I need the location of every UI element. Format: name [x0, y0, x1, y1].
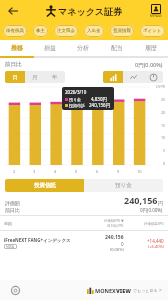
staticText: VIEW — [116, 287, 131, 294]
staticText: (+6.40%) — [148, 244, 164, 249]
button[interactable]: Pie chart — [143, 71, 163, 83]
staticText: 円 — [158, 200, 163, 206]
button[interactable]: My page — [150, 4, 162, 18]
staticText: 0円(0.00%) — [140, 207, 163, 213]
staticText: 4 — [54, 169, 57, 174]
staticText: 入出金 — [87, 28, 101, 34]
staticText: MYPAGE — [150, 14, 162, 18]
button[interactable]: 投資信託 — [5, 179, 84, 192]
staticText: 0 — [163, 161, 166, 166]
button[interactable]: ポイント — [140, 25, 165, 37]
button[interactable]: 日 — [5, 71, 25, 83]
button[interactable]: 入出金 — [84, 25, 104, 37]
staticText: 配当 — [111, 44, 123, 52]
button[interactable]: Line chart — [123, 71, 143, 83]
button[interactable]: 損益 — [33, 40, 66, 56]
staticText: 3 — [33, 169, 36, 174]
staticText: 投資信託 — [34, 182, 56, 189]
staticText: 240,156 — [105, 234, 124, 241]
staticText: 前日比 — [5, 61, 22, 68]
button[interactable]: 履歴 — [134, 40, 168, 56]
staticText: マネックス証券 — [58, 6, 123, 17]
staticText: > — [159, 287, 162, 294]
staticText: でもっと見る — [133, 288, 158, 293]
button[interactable]: 配当 — [100, 40, 134, 56]
button[interactable]: 預り金 — [84, 179, 163, 192]
button[interactable]: 月 — [25, 71, 45, 83]
staticText: 2 — [13, 169, 16, 174]
staticText: MONEX — [95, 287, 116, 294]
staticText: 20 — [161, 110, 166, 115]
staticText: 預り金 — [115, 182, 132, 189]
button[interactable]: 年 — [45, 71, 65, 83]
staticText: 4,830円 — [91, 96, 108, 102]
button[interactable]: 分析 — [66, 40, 100, 56]
staticText: 5 — [163, 148, 166, 153]
staticText: 0円(0.00%) — [135, 61, 163, 69]
staticText: (0.00%) — [110, 247, 124, 252]
button[interactable]: Back — [5, 3, 21, 19]
staticText: 評価額(円) ▼ — [104, 218, 124, 223]
button[interactable]: 保有残高 — [3, 25, 27, 37]
staticText: 分析 — [77, 44, 89, 52]
staticText: 損益 — [44, 44, 56, 52]
button[interactable]: 注文照会 — [54, 25, 78, 37]
button[interactable]: Bar chart — [103, 71, 123, 83]
staticText: NISA — [6, 244, 15, 249]
staticText: 月 — [32, 74, 38, 81]
button[interactable]: Settings — [8, 283, 22, 297]
button[interactable]: 株主 — [33, 25, 48, 37]
staticText: 6 — [96, 169, 99, 174]
staticText: 10 — [137, 169, 142, 174]
staticText: ポイント — [143, 28, 162, 34]
staticText: 銘柄 — [4, 221, 80, 226]
staticText: 9 — [117, 169, 120, 174]
staticText: 15 — [161, 123, 166, 128]
staticText: 株主 — [36, 28, 45, 34]
staticText: 前日比 — [5, 207, 20, 213]
button[interactable]: MONEX — [87, 287, 162, 294]
button[interactable]: 投資情報 — [110, 25, 134, 37]
staticText: 240,156円 — [89, 102, 111, 108]
staticText: 預り金 — [69, 97, 82, 102]
staticText: (万円) — [156, 84, 166, 89]
staticText: 推移 — [11, 44, 23, 52]
button[interactable]: 推移 — [0, 40, 33, 56]
staticText: 5 — [75, 169, 78, 174]
staticText: 保有残高 — [6, 28, 24, 34]
staticText: iFreeNEXT FANG+インデックス — [4, 237, 71, 243]
staticText: 投資情報 — [113, 28, 131, 34]
staticText: 2026/3/10 — [65, 89, 87, 95]
staticText: 10 — [161, 135, 166, 140]
staticText: 25 — [161, 97, 166, 102]
staticText: 0 — [121, 241, 124, 247]
staticText: 投資信託 — [69, 103, 85, 108]
staticText: 評価額 — [5, 200, 20, 206]
staticText: 履歴 — [145, 44, 157, 52]
staticText: 年 — [52, 74, 58, 81]
staticText: +14,440 — [147, 238, 164, 244]
staticText: 日 — [12, 74, 18, 81]
staticText: 評価損益(円) — [144, 221, 164, 226]
staticText: 前日比(円) — [107, 223, 124, 228]
staticText: 240,156 — [124, 194, 158, 206]
button[interactable]: iFreeNEXT FANG+インデックス — [0, 231, 168, 255]
staticText: 注文照会 — [57, 28, 75, 34]
